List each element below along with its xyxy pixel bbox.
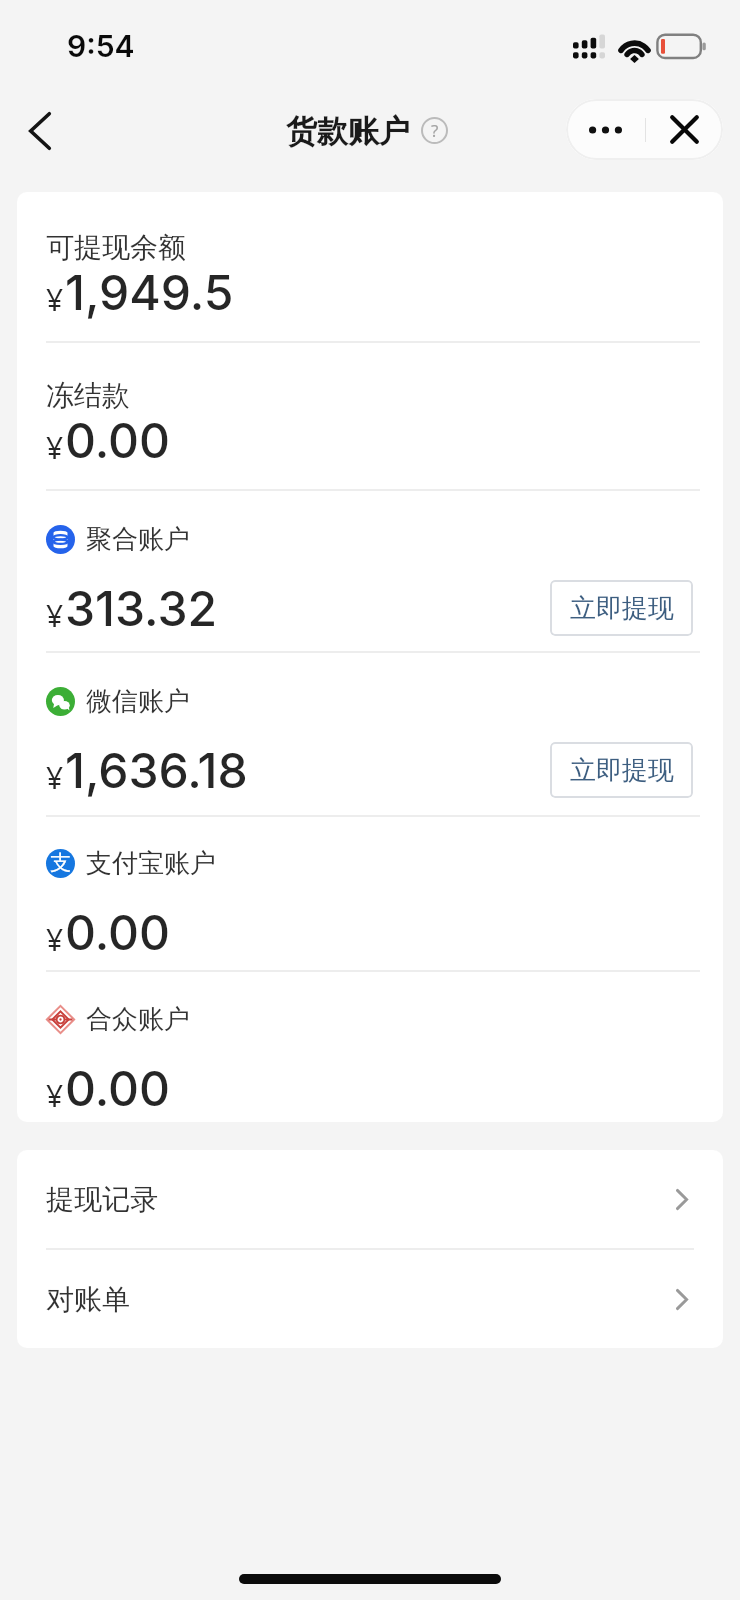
staticText: 1,949.5 [65,263,234,321]
button[interactable]: More options [566,99,645,160]
button[interactable]: Close [646,99,723,160]
staticText: 0.00 [65,1059,170,1117]
button[interactable]: 立即提现 [550,742,693,798]
staticText: 微信账户 [86,685,190,718]
button[interactable]: 提现记录 [17,1150,723,1248]
staticText: 1,636.18 [65,741,248,799]
staticText: 货款账户 [286,112,410,151]
staticText: 支付宝账户 [86,847,216,880]
staticText: ¥ [46,427,64,468]
staticText: ¥ [46,757,64,798]
staticText: 对账单 [46,1282,130,1317]
staticText: 聚合账户 [86,523,190,556]
staticText: ¥ [46,919,64,960]
staticText: 0.00 [65,411,170,469]
button[interactable]: Help [421,117,448,144]
staticText: ¥ [46,279,64,320]
staticText: ¥ [46,1075,64,1116]
staticText: ¥ [46,595,64,636]
staticText: 提现记录 [46,1182,158,1217]
staticText: 立即提现 [570,592,674,625]
staticText: 313.32 [65,579,218,637]
button[interactable]: Back [8,99,72,163]
button[interactable]: 对账单 [17,1250,723,1348]
staticText: 合众账户 [86,1003,190,1036]
staticText: ? [431,119,439,142]
staticText: 9:54 [67,28,135,64]
staticText: 支 [50,850,71,876]
button[interactable]: 立即提现 [550,580,693,636]
staticText: 0.00 [65,903,170,961]
staticText: 可提现余额 [46,230,186,265]
staticText: 冻结款 [46,378,130,413]
staticText: 立即提现 [570,754,674,787]
